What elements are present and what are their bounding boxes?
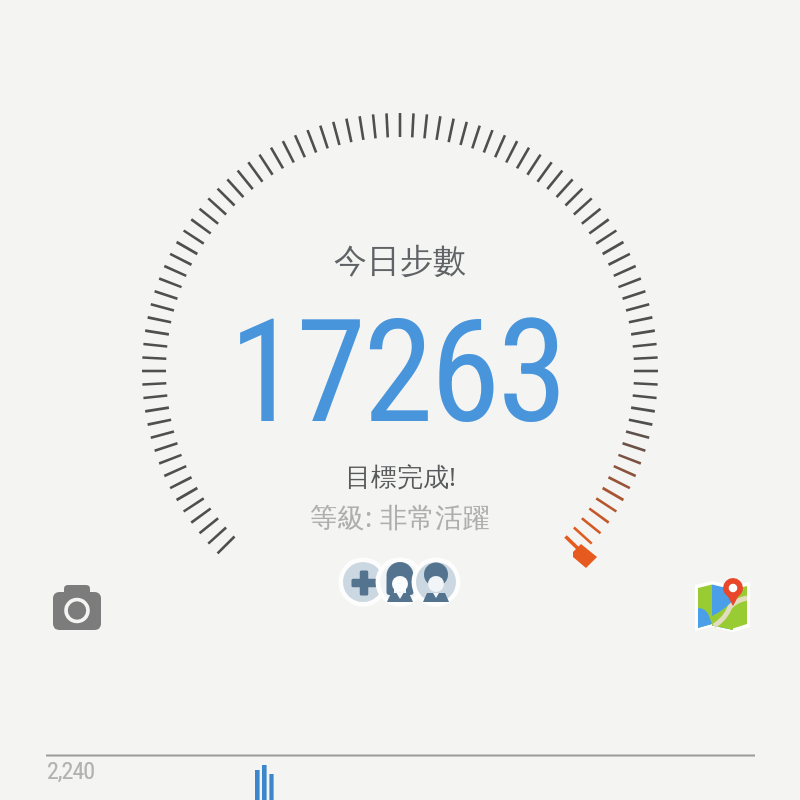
staticText: 目標完成! [345,458,456,494]
button[interactable] [338,557,388,607]
staticText: 17263 [229,289,565,455]
button[interactable] [45,578,109,642]
button[interactable] [688,575,758,645]
button[interactable] [375,557,425,607]
staticText: 2,240 [47,757,95,785]
staticText: 等級: 非常活躍 [310,498,491,535]
staticText: 今日步數 [334,240,466,282]
button[interactable] [411,557,461,607]
